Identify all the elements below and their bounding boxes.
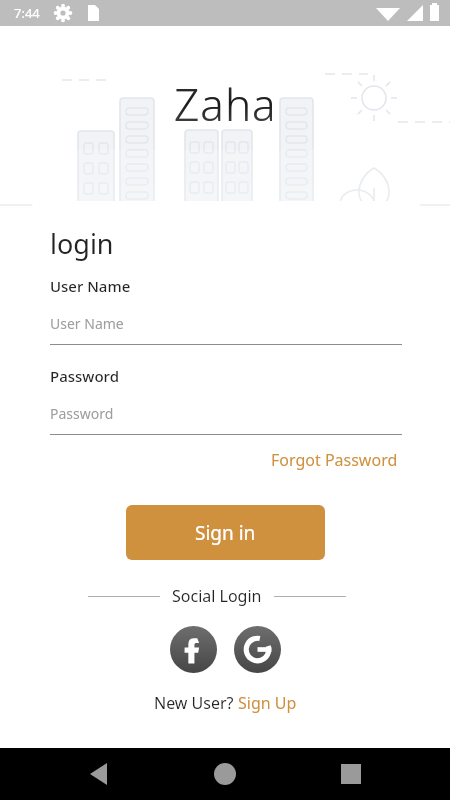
staticText: Password [50,366,119,386]
staticText: User Name [50,314,124,333]
staticText: Password [50,404,114,423]
button[interactable]: Sign in with Facebook [170,626,217,673]
button[interactable]: Sign in [126,505,325,560]
staticText: login [50,225,114,262]
staticText: User Name [50,276,131,296]
staticText: New User? [154,692,238,714]
button[interactable]: Password [50,404,402,435]
button[interactable]: User Name [50,314,402,345]
button[interactable]: Sign Up [238,692,297,714]
staticText: 7:44 [14,4,40,22]
staticText: Forgot Password [271,449,398,471]
staticText: Social Login [172,585,262,607]
staticText: Zaha [174,74,277,134]
button[interactable]: Forgot Password [267,445,402,475]
staticText: Sign in [195,520,256,546]
staticText: Sign Up [238,692,297,714]
button[interactable]: Sign in with Google [234,626,281,673]
